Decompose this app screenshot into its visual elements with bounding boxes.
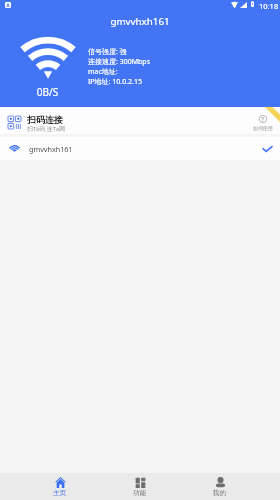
staticText: 如何使用 (253, 125, 273, 131)
button[interactable]: gmvvhxh161 (0, 137, 280, 160)
button[interactable]: 主页 (40, 473, 80, 500)
staticText: 我的 (213, 489, 227, 497)
button[interactable]: 功能 (120, 473, 160, 500)
staticText: gmvvhxh161 (0, 15, 280, 28)
staticText: mac地址: (88, 67, 120, 77)
staticText: 扫Ta码 连Ta网 (27, 125, 66, 133)
staticText: 扫码连接 (27, 114, 63, 125)
staticText: gmvvhxh161 (29, 144, 73, 154)
button[interactable]: 如何使用 (248, 107, 280, 117)
staticText: 0B/S (20, 85, 75, 99)
staticText: ? (261, 115, 265, 125)
staticText: 10:18 (259, 1, 279, 11)
staticText: 信号强度: 强 (88, 47, 127, 57)
staticText: 连接速度: 300Mbps (88, 57, 151, 67)
staticText: 功能 (133, 489, 147, 497)
staticText: IP地址: 10.0.2.15 (88, 77, 142, 87)
staticText: 主页 (53, 489, 67, 497)
button[interactable]: 我的 (200, 473, 240, 500)
button[interactable]: 扫码连接 (0, 107, 280, 134)
